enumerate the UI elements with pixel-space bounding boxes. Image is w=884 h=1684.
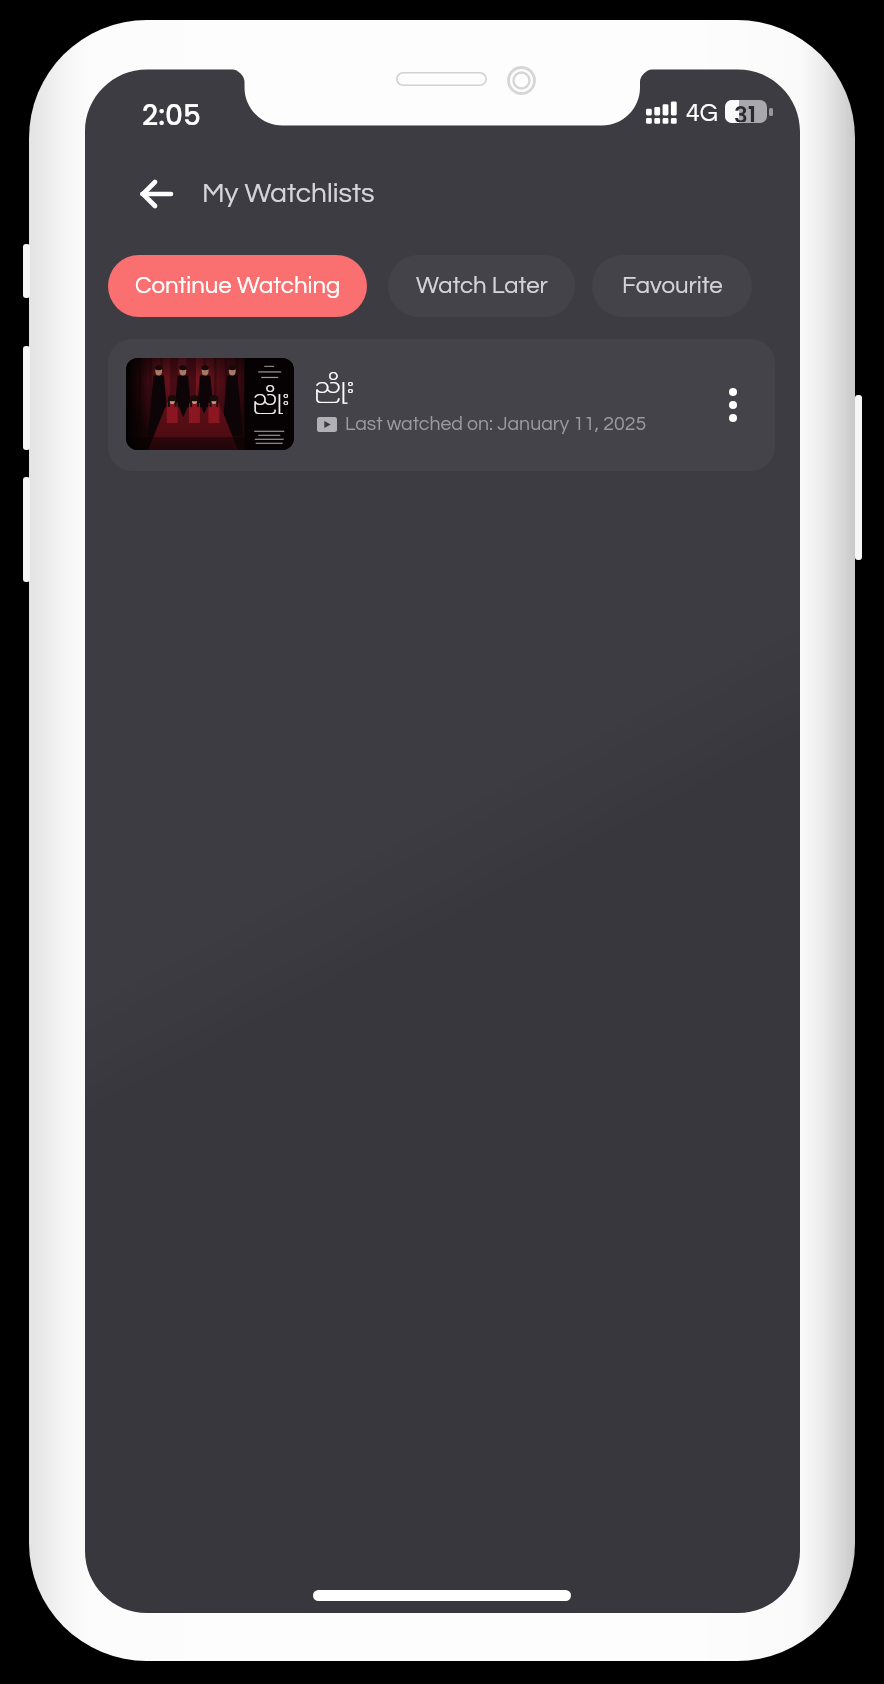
button[interactable]: Watch Later: [388, 255, 575, 317]
button[interactable]: Favourite: [592, 255, 752, 317]
button[interactable]: ညိုး: [108, 339, 775, 471]
button[interactable]: More options: [700, 355, 766, 455]
staticText: 4G: [686, 100, 718, 126]
staticText: ညိုး: [314, 371, 355, 404]
staticText: Continue Watching: [135, 273, 341, 298]
staticText: 2:05: [142, 96, 201, 135]
button[interactable]: Back: [124, 163, 188, 225]
staticText: Favourite: [622, 273, 723, 298]
staticText: ညိုး: [252, 384, 290, 414]
staticText: Last watched on: January 11, 2025: [345, 414, 647, 434]
button[interactable]: Continue Watching: [108, 255, 367, 317]
staticText: My Watchlists: [202, 179, 375, 208]
staticText: Watch Later: [416, 273, 548, 298]
staticText: 31: [734, 100, 757, 122]
